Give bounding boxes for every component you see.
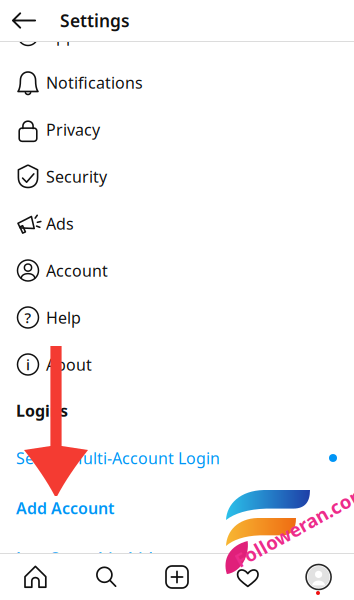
button[interactable]: Profile: [283, 554, 354, 600]
button[interactable]: Add Account: [0, 483, 354, 533]
button[interactable]: Security: [0, 153, 354, 200]
staticText: Privacy: [46, 119, 100, 140]
button[interactable]: Search: [71, 554, 142, 600]
button[interactable]: ?: [0, 294, 354, 341]
button[interactable]: Ads: [0, 200, 354, 247]
button[interactable]: Set up Multi-Account Login: [0, 433, 354, 483]
staticText: Logins: [16, 400, 68, 421]
staticText: Apps and Websites: [46, 25, 190, 46]
staticText: Settings: [60, 9, 130, 32]
staticText: Security: [46, 166, 107, 187]
staticText: Set up Multi-Account Login: [16, 447, 220, 469]
button[interactable]: i: [0, 341, 354, 388]
staticText: About: [46, 354, 92, 375]
staticText: ?: [24, 308, 31, 327]
button[interactable]: Back: [0, 0, 44, 41]
staticText: Help: [46, 307, 81, 328]
staticText: i: [26, 355, 30, 374]
button[interactable]: Activity: [212, 554, 283, 600]
staticText: Log Out rahimhid: [16, 547, 153, 569]
button[interactable]: Privacy: [0, 106, 354, 153]
button[interactable]: Log Out rahimhid: [0, 533, 354, 583]
button[interactable]: New post: [142, 554, 212, 600]
staticText: Followeran.com: [227, 514, 354, 538]
button[interactable]: Home: [0, 554, 71, 600]
button[interactable]: Notifications: [0, 59, 354, 106]
button[interactable]: Apps and Websites: [0, 12, 354, 59]
staticText: Notifications: [46, 72, 143, 93]
staticText: Add Account: [16, 497, 114, 519]
button[interactable]: Account: [0, 247, 354, 294]
staticText: Account: [46, 260, 108, 281]
staticText: Ads: [46, 213, 74, 234]
